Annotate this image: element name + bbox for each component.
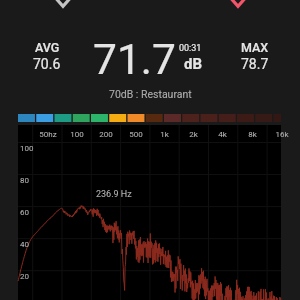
staticText: 1k [160,130,169,139]
staticText: 20 [20,272,29,281]
staticText: 70.6 [33,56,61,72]
staticText: 236.9 Hz [96,189,132,200]
staticText: 100 [20,144,34,153]
button[interactable]: 70dB : Restaurant [0,86,300,102]
staticText: 100 [70,130,84,139]
staticText: 71.7 [93,35,176,77]
staticText: 70dB : Restaurant [109,88,192,100]
staticText: 2k [189,130,198,139]
staticText: 80 [20,176,29,185]
staticText: 500 [129,130,143,139]
button[interactable]: 71.7 [93,35,209,77]
staticText: dB [184,55,203,73]
staticText: 4k [218,130,227,139]
staticText: AVG [35,40,60,55]
button[interactable]: Expand average [52,0,74,8]
staticText: 8k [248,130,257,139]
staticText: 78.7 [241,56,269,72]
staticText: MAX [241,40,269,55]
staticText: 60 [20,208,29,217]
button[interactable]: AVG [17,40,77,74]
staticText: 16k [275,130,289,139]
button[interactable]: MAX [225,40,285,74]
staticText: 200 [99,130,113,139]
staticText: 00:31 [179,43,202,54]
button[interactable]: Expand maximum [227,0,249,8]
staticText: 40 [20,240,29,249]
staticText: 50hz [39,130,57,139]
